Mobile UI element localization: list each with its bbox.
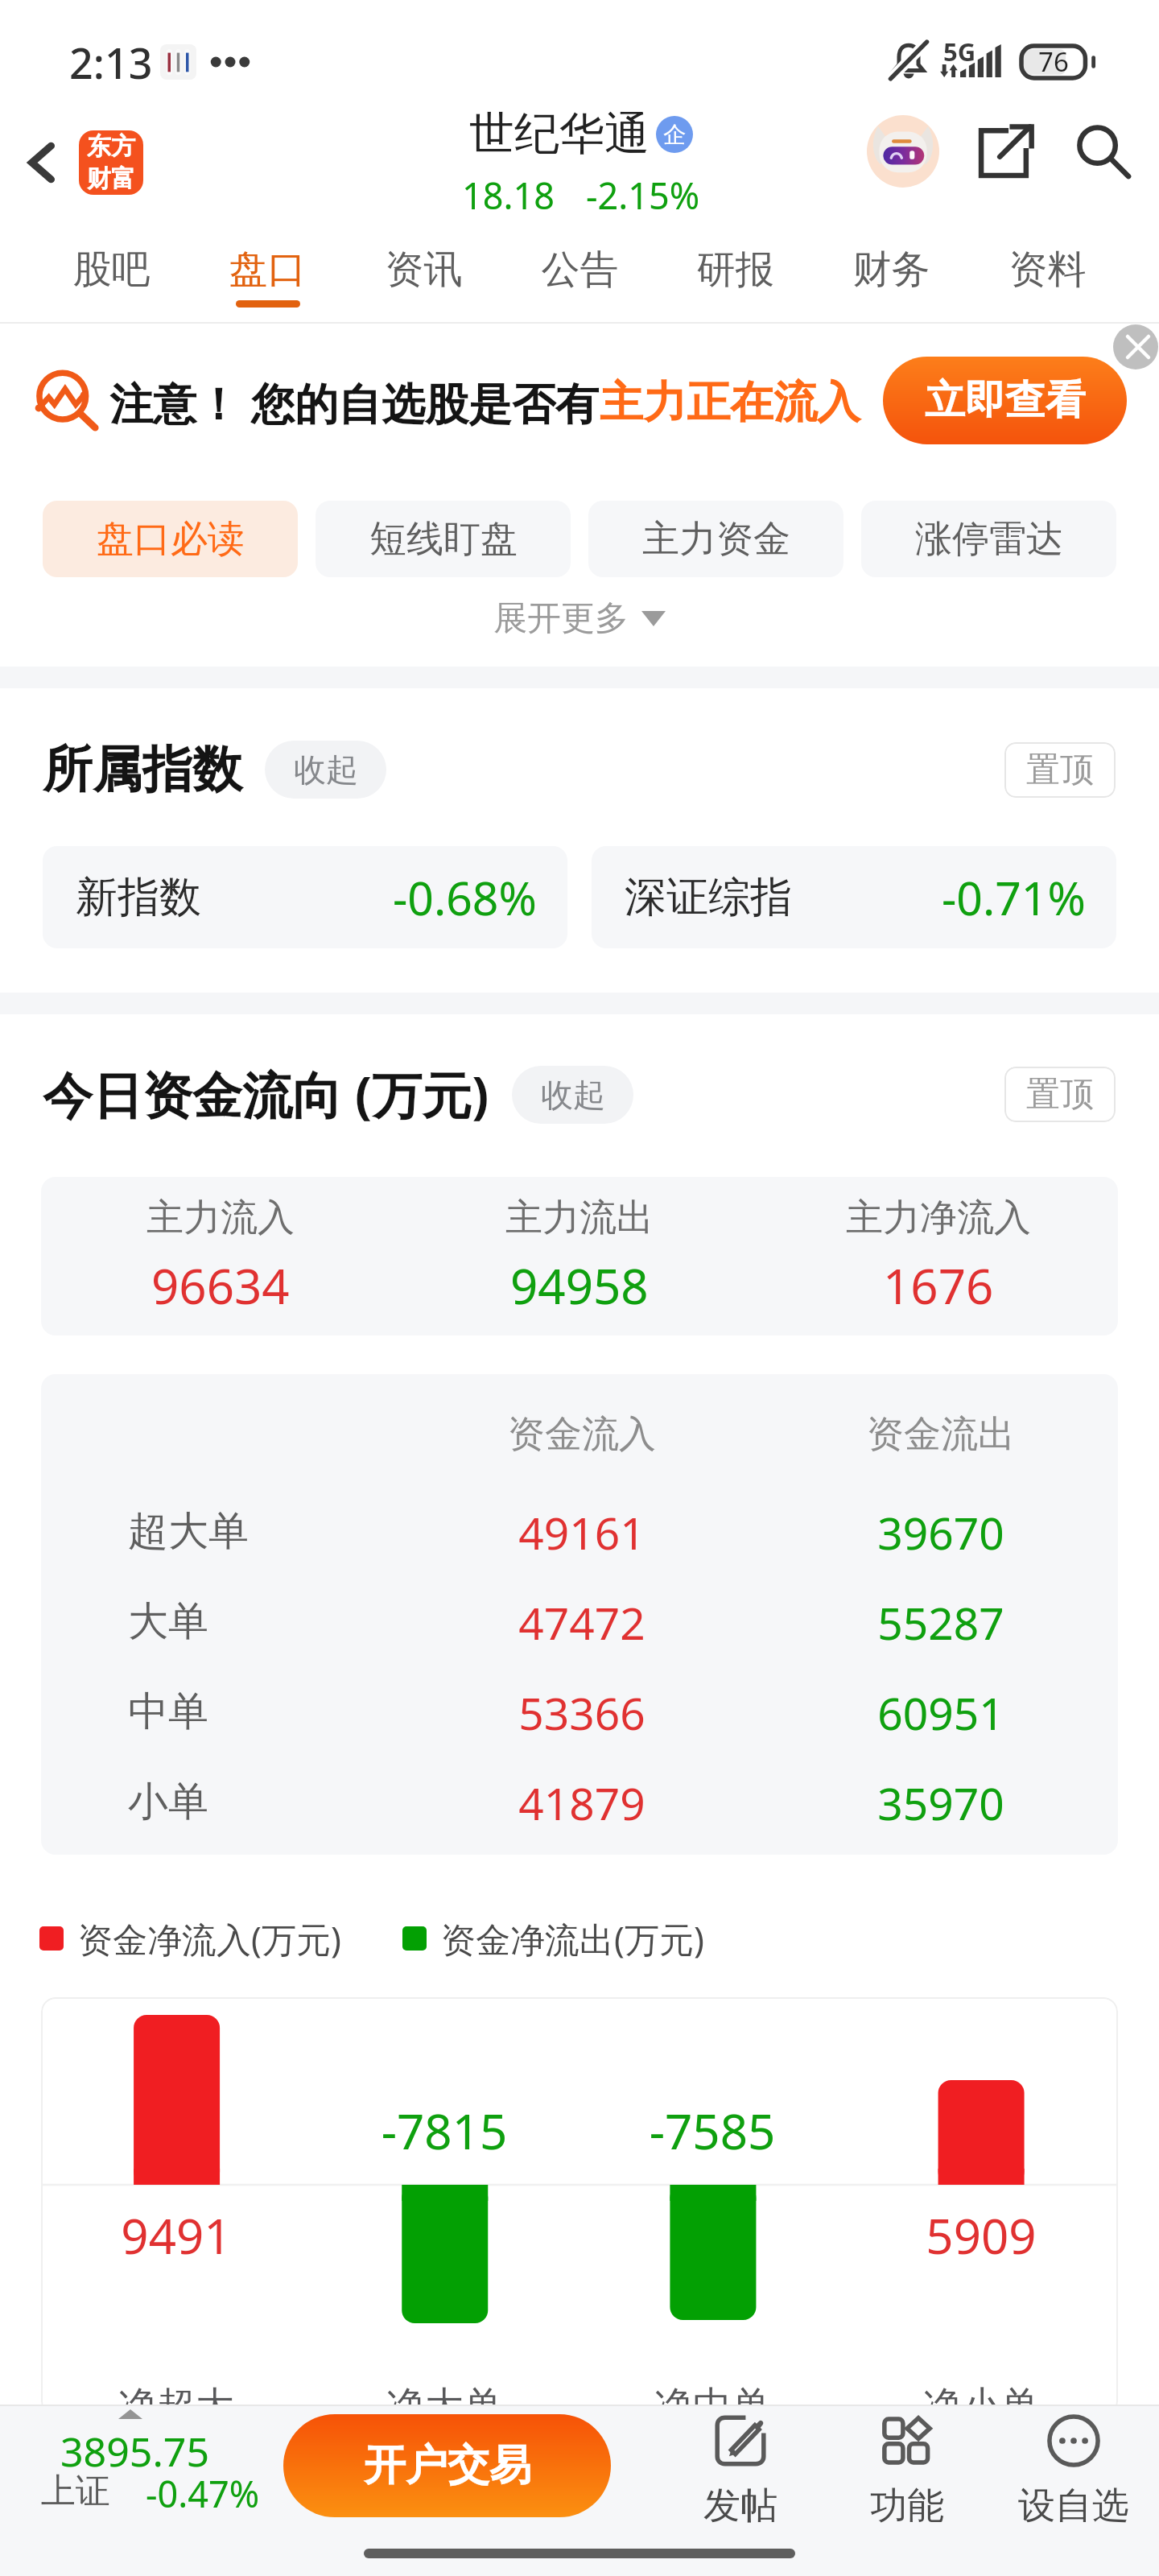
staticText: 发帖: [668, 2483, 813, 2529]
button[interactable]: 功能: [835, 2409, 980, 2530]
staticText: 9491: [56, 2202, 297, 2268]
staticText: 净大单: [324, 2382, 565, 2416]
button[interactable]: 设自选: [1001, 2409, 1146, 2530]
button[interactable]: Search: [1066, 114, 1140, 188]
staticText: 主力正在流入: [600, 375, 860, 430]
staticText: 展开更多: [493, 597, 629, 640]
staticText: 世纪华通: [469, 105, 650, 163]
button[interactable]: 3895.75: [32, 2405, 274, 2533]
staticText: 涨停雷达: [915, 516, 1063, 563]
button[interactable]: 深证综指: [625, 846, 1086, 948]
staticText: 60951: [780, 1682, 1102, 1740]
staticText: 主力资金: [642, 516, 790, 563]
button[interactable]: 主力资金: [588, 501, 843, 577]
staticText: 3895.75: [60, 2424, 209, 2479]
staticText: 公告: [502, 246, 658, 294]
staticText: 76: [1038, 43, 1069, 80]
staticText: -0.71%: [942, 866, 1086, 929]
button[interactable]: Share: [968, 114, 1042, 188]
button[interactable]: 置顶: [1004, 742, 1116, 798]
staticText: 深证综指: [625, 871, 792, 924]
button[interactable]: Assistant: [860, 109, 946, 194]
button[interactable]: 股吧: [34, 225, 189, 324]
staticText: 财务: [814, 246, 969, 294]
staticText: 资金流出: [780, 1411, 1102, 1458]
staticText: 超大单: [128, 1506, 249, 1557]
button[interactable]: 收起: [265, 741, 386, 799]
button[interactable]: Close: [1113, 324, 1158, 369]
button[interactable]: 研报: [658, 225, 813, 324]
staticText: 47472: [421, 1592, 743, 1650]
staticText: 所属指数: [43, 738, 242, 801]
button[interactable]: 资料: [970, 225, 1125, 324]
staticText: 功能: [835, 2483, 980, 2529]
staticText: 东方: [87, 131, 135, 162]
staticText: 49161: [421, 1502, 743, 1560]
staticText: 94958: [510, 1253, 649, 1319]
staticText: 收起: [541, 1075, 605, 1115]
staticText: 净中单: [592, 2382, 833, 2416]
staticText: 上证: [41, 2470, 110, 2513]
staticText: 35970: [780, 1773, 1102, 1831]
staticText: 主力流出: [505, 1195, 654, 1241]
staticText: -7585: [592, 2098, 833, 2164]
staticText: 41879: [421, 1773, 743, 1831]
staticText: 55287: [780, 1592, 1102, 1650]
button[interactable]: 资讯: [346, 225, 501, 324]
button[interactable]: 置顶: [1004, 1067, 1116, 1122]
staticText: 主力净流入: [846, 1195, 1031, 1241]
staticText: 盘口必读: [97, 516, 245, 563]
staticText: 96634: [151, 1253, 290, 1319]
staticText: 净小单: [860, 2382, 1102, 2416]
staticText: 财富: [87, 163, 135, 194]
button[interactable]: East Money: [79, 130, 143, 195]
button[interactable]: Back: [5, 127, 76, 198]
button[interactable]: 涨停雷达: [861, 501, 1116, 577]
staticText: 企: [663, 121, 686, 149]
staticText: 资金净流出(万元): [441, 1915, 704, 1963]
staticText: 新指数: [76, 871, 201, 924]
staticText: 注意！ 您的自选股是否有: [109, 373, 600, 432]
staticText: 资料: [970, 246, 1125, 294]
staticText: 39670: [780, 1502, 1102, 1560]
staticText: 短线盯盘: [369, 516, 518, 563]
staticText: 资金流入: [421, 1411, 743, 1458]
button[interactable]: 新指数: [76, 846, 537, 948]
staticText: 1676: [883, 1253, 994, 1319]
staticText: 5G: [943, 35, 976, 68]
staticText: 设自选: [1001, 2483, 1146, 2529]
button[interactable]: 展开更多: [469, 589, 690, 648]
staticText: 资讯: [346, 246, 501, 294]
staticText: 主力流入: [146, 1195, 295, 1241]
staticText: 2:13: [69, 34, 153, 91]
button[interactable]: 发帖: [668, 2409, 813, 2530]
button[interactable]: 收起: [512, 1066, 633, 1124]
staticText: 18.18: [462, 171, 555, 220]
staticText: 置顶: [1026, 749, 1094, 791]
staticText: -2.15%: [586, 171, 700, 220]
button[interactable]: 公告: [502, 225, 658, 324]
staticText: 收起: [294, 749, 358, 790]
staticText: -0.47%: [146, 2469, 260, 2518]
staticText: 中单: [128, 1686, 208, 1737]
staticText: 今日资金流向 (万元): [43, 1060, 489, 1129]
button[interactable]: 立即查看: [883, 357, 1127, 444]
staticText: 5909: [860, 2202, 1102, 2268]
staticText: 开户交易: [364, 2439, 531, 2492]
staticText: 资金净流入(万元): [78, 1915, 341, 1963]
staticText: 净超大: [56, 2382, 297, 2416]
button[interactable]: 财务: [814, 225, 969, 324]
button[interactable]: 短线盯盘: [316, 501, 571, 577]
staticText: 53366: [421, 1682, 743, 1740]
staticText: 小单: [128, 1777, 208, 1827]
button[interactable]: 盘口必读: [43, 501, 298, 577]
staticText: 研报: [658, 246, 813, 294]
staticText: 大单: [128, 1596, 208, 1647]
button[interactable]: 开户交易: [283, 2414, 611, 2517]
staticText: 立即查看: [925, 375, 1086, 426]
staticText: 置顶: [1026, 1073, 1094, 1116]
staticText: 盘口: [190, 246, 345, 294]
staticText: -7815: [324, 2098, 565, 2164]
button[interactable]: 盘口: [190, 225, 345, 324]
staticText: -0.68%: [393, 866, 537, 929]
